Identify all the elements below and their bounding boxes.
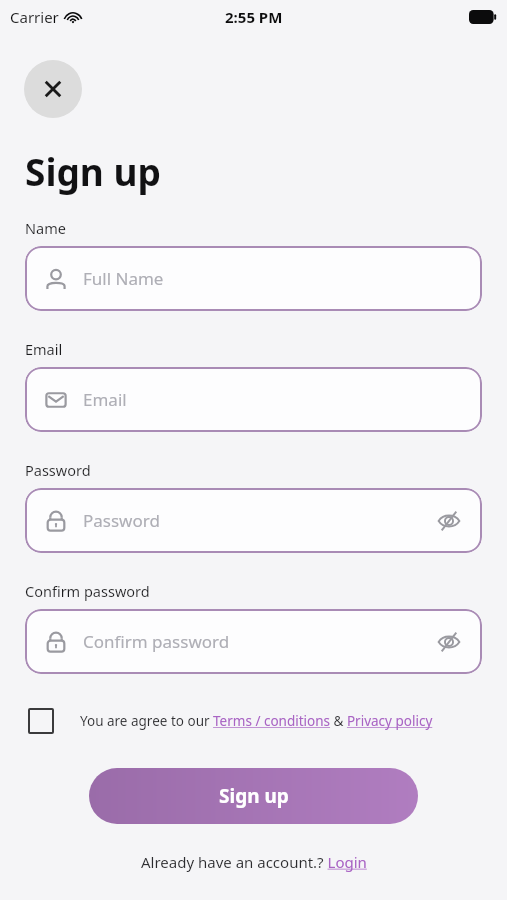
- staticText: Sign up: [219, 783, 289, 809]
- staticText: Carrier: [10, 7, 59, 27]
- staticText: Already have an account.? Login: [141, 852, 367, 872]
- button[interactable]: Show password: [434, 627, 464, 657]
- staticText: Password: [25, 460, 91, 480]
- staticText: Confirm password: [25, 581, 150, 601]
- staticText: You are agree to our Terms / conditions …: [80, 712, 433, 730]
- staticText: 2:55 PM: [225, 7, 283, 27]
- button[interactable]: Already have an account.? Login: [141, 852, 367, 872]
- staticText: Full Name: [83, 267, 164, 290]
- button[interactable]: Email: [25, 367, 482, 432]
- staticText: Name: [25, 218, 66, 238]
- button[interactable]: Agree to terms checkbox: [28, 708, 54, 734]
- staticText: Email: [83, 388, 127, 411]
- button[interactable]: Show password: [434, 506, 464, 536]
- staticText: Email: [25, 339, 63, 359]
- button[interactable]: Close: [24, 60, 82, 118]
- staticText: Password: [83, 509, 160, 532]
- button[interactable]: Confirm password: [25, 609, 482, 674]
- button[interactable]: Password: [25, 488, 482, 553]
- staticText: Sign up: [25, 146, 161, 196]
- button[interactable]: Full Name: [25, 246, 482, 311]
- button[interactable]: Sign up: [89, 768, 418, 824]
- staticText: Confirm password: [83, 630, 230, 653]
